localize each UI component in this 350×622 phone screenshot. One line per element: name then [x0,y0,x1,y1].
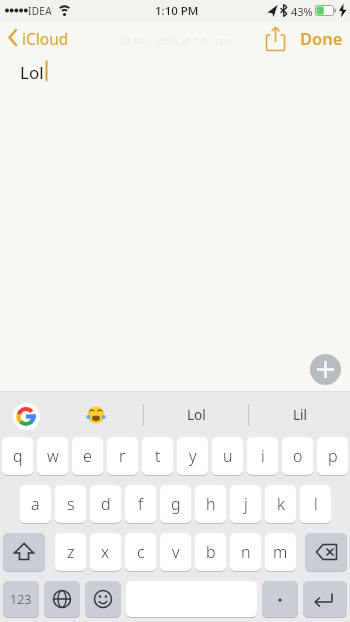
staticText: l [314,493,318,515]
button[interactable] [85,581,121,617]
button[interactable]: l [300,485,331,523]
button[interactable] [12,402,41,431]
button[interactable] [82,400,110,430]
staticText: u [223,445,233,467]
button[interactable]: i [247,437,278,475]
staticText: 123 [10,591,32,608]
button[interactable]: Lil [260,396,340,434]
staticText: 43% [291,4,313,19]
staticText: y [189,445,197,467]
staticText: x [101,541,110,563]
staticText: g [171,493,181,515]
button[interactable] [303,581,347,617]
button[interactable]: j [230,485,261,523]
button[interactable]: Done [293,24,349,52]
button[interactable]: d [90,485,121,523]
button[interactable]: a [20,485,51,523]
staticText: m [273,541,288,563]
staticText: Lol [20,61,44,84]
button[interactable]: o [282,437,313,475]
staticText: t [155,445,161,467]
staticText: h [206,493,216,515]
staticText: Lil [293,406,308,424]
staticText: r [119,445,126,467]
button[interactable]: k [265,485,296,523]
button[interactable]: b [195,533,226,571]
button[interactable]: q [2,437,33,475]
button[interactable]: p [317,437,348,475]
staticText: 1:10 PM [155,3,199,19]
staticText: k [277,493,285,515]
button[interactable]: iCloud [4,24,76,52]
button[interactable]: w [37,437,68,475]
staticText: s [67,493,75,515]
staticText: c [137,541,145,563]
button[interactable]: z [55,533,86,571]
button[interactable]: f [125,485,156,523]
button[interactable]: m [265,533,296,571]
staticText: 10 May 2016 at 1:10 pm [119,34,231,48]
button[interactable]: h [195,485,226,523]
button[interactable] [305,533,347,571]
button[interactable]: r [107,437,138,475]
staticText: b [206,541,216,563]
staticText: f [138,493,143,515]
staticText: d [101,493,111,515]
button[interactable] [263,25,289,52]
staticText: IDEA [28,4,52,18]
staticText: n [241,541,251,563]
staticText: i [261,445,265,467]
staticText: Lol [187,406,206,424]
button[interactable] [3,533,45,571]
staticText: iCloud [22,28,69,49]
staticText: e [83,445,92,467]
button[interactable]: n [230,533,261,571]
button[interactable]: t [142,437,173,475]
staticText: a [31,493,40,515]
staticText: z [67,541,75,563]
button[interactable]: v [160,533,191,571]
staticText: o [293,445,303,467]
staticText: j [244,493,248,515]
button[interactable] [262,581,298,617]
button[interactable] [44,581,80,617]
staticText: Done [300,27,343,49]
button[interactable]: c [125,533,156,571]
button[interactable]: u [212,437,243,475]
button[interactable]: s [55,485,86,523]
button[interactable]: Lol [156,396,236,434]
button[interactable]: e [72,437,103,475]
staticText: q [13,445,23,467]
button[interactable]: y [177,437,208,475]
button[interactable]: 123 [3,581,39,617]
staticText: p [328,445,338,467]
button[interactable]: x [90,533,121,571]
button[interactable] [310,354,341,385]
button[interactable]: g [160,485,191,523]
staticText: v [172,541,180,563]
staticText: w [47,445,59,467]
